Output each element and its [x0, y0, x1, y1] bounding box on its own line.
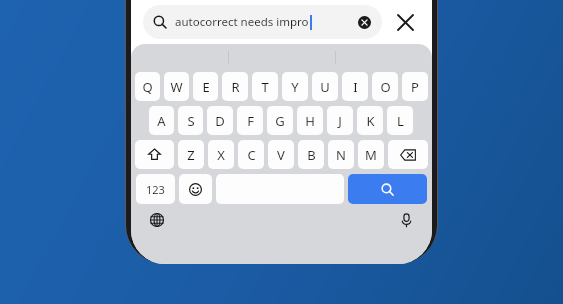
staticText: C	[247, 146, 256, 164]
button[interactable]: M	[358, 140, 384, 169]
staticText: B	[307, 146, 316, 164]
button[interactable]: I	[342, 72, 368, 101]
button[interactable]: C	[238, 140, 264, 169]
button[interactable]: Search	[348, 174, 427, 204]
button[interactable]: Shift	[135, 140, 174, 169]
staticText: N	[336, 146, 346, 164]
button[interactable]: O	[372, 72, 398, 101]
staticText: X	[217, 146, 225, 164]
button[interactable]: J	[327, 106, 353, 135]
staticText: S	[187, 112, 195, 130]
staticText: Y	[291, 78, 299, 96]
staticText: O	[380, 78, 391, 96]
staticText: R	[231, 78, 240, 96]
button[interactable]: Z	[178, 140, 204, 169]
button[interactable]: R	[222, 72, 248, 101]
button[interactable]: Change keyboard language	[145, 208, 169, 232]
button[interactable]: X	[208, 140, 234, 169]
button[interactable]: 123	[136, 174, 175, 204]
button[interactable]: S	[178, 106, 203, 135]
button[interactable]: Suggestion 3	[336, 44, 432, 70]
button[interactable]: Close search	[388, 5, 422, 39]
staticText: A	[157, 112, 166, 130]
staticText: G	[275, 112, 285, 130]
staticText: 123	[146, 182, 165, 197]
staticText: I	[353, 78, 358, 96]
button[interactable]: P	[402, 72, 428, 101]
button[interactable]: autocorrect needs impro	[143, 5, 382, 39]
staticText: autocorrect needs impro	[175, 14, 309, 30]
button[interactable]: B	[298, 140, 324, 169]
button[interactable]: V	[268, 140, 294, 169]
button[interactable]: Q	[135, 72, 160, 101]
button[interactable]: A	[149, 106, 174, 135]
button[interactable]: F	[237, 106, 263, 135]
staticText: J	[338, 112, 342, 130]
button[interactable]: E	[193, 72, 218, 101]
staticText: W	[170, 78, 183, 96]
button[interactable]: Voice input	[394, 208, 418, 232]
staticText: V	[277, 146, 285, 164]
button[interactable]: Backspace	[388, 140, 428, 169]
staticText: H	[305, 112, 315, 130]
button[interactable]: G	[267, 106, 293, 135]
staticText: P	[411, 78, 419, 96]
staticText: Z	[187, 146, 195, 164]
button[interactable]: L	[387, 106, 413, 135]
staticText: E	[202, 78, 210, 96]
staticText: Q	[142, 78, 153, 96]
button[interactable]: H	[297, 106, 323, 135]
button[interactable]: W	[164, 72, 189, 101]
staticText: T	[261, 78, 269, 96]
button[interactable]: Suggestion 1	[131, 44, 228, 70]
button[interactable]: K	[357, 106, 383, 135]
staticText: M	[365, 146, 377, 164]
button[interactable]: N	[328, 140, 354, 169]
button[interactable]: Y	[282, 72, 308, 101]
button[interactable]: T	[252, 72, 278, 101]
button[interactable]: Emoji	[179, 174, 212, 204]
staticText: D	[215, 112, 225, 130]
staticText: U	[320, 78, 330, 96]
button[interactable]: U	[312, 72, 338, 101]
staticText: L	[397, 112, 404, 130]
button[interactable]: D	[207, 106, 233, 135]
staticText: F	[247, 112, 254, 130]
button[interactable]: Clear text	[354, 12, 374, 32]
staticText: K	[366, 112, 375, 130]
